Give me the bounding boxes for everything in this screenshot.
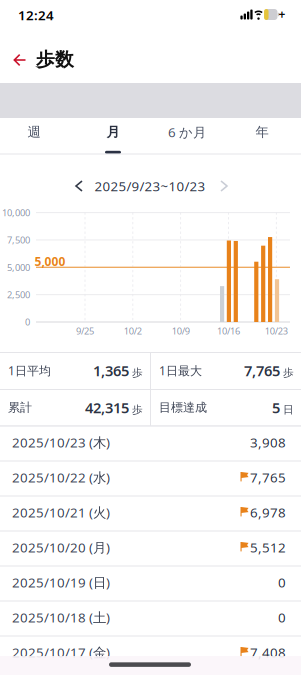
staticText: 10/16 xyxy=(217,325,240,337)
staticText: 年 xyxy=(255,124,268,140)
staticText: 5,512 xyxy=(250,538,286,556)
staticText: 12:24 xyxy=(18,6,54,24)
staticText: 7,500 xyxy=(7,234,30,246)
staticText: 2025/10/23 (木) xyxy=(12,433,110,451)
staticText: 6,978 xyxy=(250,503,286,521)
button[interactable]: 2025/10/22 (水) xyxy=(0,461,301,495)
staticText: 月 xyxy=(106,124,119,140)
staticText: 42,315 xyxy=(85,398,129,417)
staticText: 5,000 xyxy=(34,253,65,269)
staticText: 0 xyxy=(278,573,286,591)
button[interactable]: 年 xyxy=(232,117,292,147)
staticText: 1,365 xyxy=(93,361,129,380)
staticText: 1日最大 xyxy=(159,362,202,378)
staticText: 10/9 xyxy=(172,325,190,337)
staticText: 7,765 xyxy=(250,468,286,486)
button[interactable]: 2025/10/19 (日) xyxy=(0,566,301,600)
button[interactable]: 2025/10/21 (火) xyxy=(0,496,301,530)
staticText: 9/25 xyxy=(76,325,94,337)
staticText: 5 xyxy=(272,398,280,417)
staticText: 2025/10/20 (月) xyxy=(12,538,110,556)
staticText: 2025/10/19 (日) xyxy=(12,573,110,591)
staticText: 7,408 xyxy=(250,643,286,661)
staticText: 2025/10/17 (金) xyxy=(12,643,110,661)
button[interactable]: 2025/10/17 (金) xyxy=(0,636,301,670)
staticText: 累計 xyxy=(8,400,32,415)
button[interactable]: 2025/10/23 (木) xyxy=(0,426,301,460)
staticText: 0 xyxy=(278,608,286,626)
staticText: + xyxy=(278,6,285,22)
button[interactable] xyxy=(68,173,90,199)
staticText: 歩数 xyxy=(36,48,74,71)
button[interactable]: 2025/10/20 (月) xyxy=(0,531,301,565)
staticText: 1日平均 xyxy=(8,362,51,378)
staticText: 2025/10/21 (火) xyxy=(12,503,110,521)
staticText: 2025/10/18 (土) xyxy=(12,608,110,626)
button[interactable]: 週 xyxy=(4,117,64,147)
button[interactable]: 6 か月 xyxy=(157,117,217,147)
staticText: 目標達成 xyxy=(159,400,207,415)
staticText: 2,500 xyxy=(7,288,30,301)
button[interactable] xyxy=(7,48,31,72)
button[interactable]: 2025/10/18 (土) xyxy=(0,601,301,635)
staticText: 週 xyxy=(27,124,40,140)
staticText: 2025/9/23~10/23 xyxy=(94,177,205,195)
staticText: 5,000 xyxy=(7,261,30,273)
staticText: 7,765 xyxy=(244,361,280,380)
staticText: 10/23 xyxy=(265,325,288,337)
staticText: 3,908 xyxy=(250,433,286,451)
staticText: 10/2 xyxy=(124,325,142,337)
staticText: 10,000 xyxy=(2,206,30,219)
button[interactable] xyxy=(213,173,235,199)
staticText: 歩 xyxy=(132,403,143,416)
staticText: 2025/10/22 (水) xyxy=(12,468,110,486)
staticText: 日 xyxy=(283,403,294,416)
staticText: 6 か月 xyxy=(168,123,206,141)
button[interactable]: 月 xyxy=(83,117,143,147)
staticText: 0 xyxy=(25,316,30,328)
staticText: 歩 xyxy=(283,366,294,379)
staticText: 歩 xyxy=(132,366,143,379)
